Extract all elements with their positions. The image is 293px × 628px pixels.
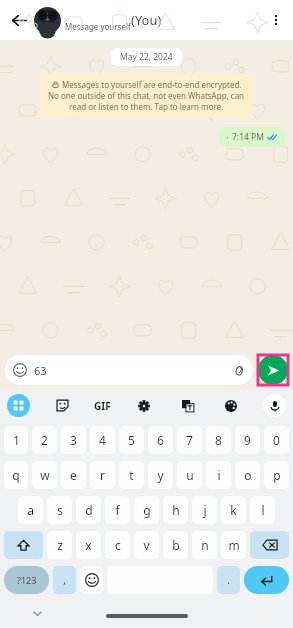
button[interactable]: 63 <box>5 355 253 385</box>
staticText: 3 <box>70 432 77 448</box>
staticText: y <box>157 467 164 483</box>
button[interactable]: Translate <box>176 394 199 417</box>
button[interactable]: 6 <box>148 426 173 454</box>
button[interactable]: f <box>105 496 130 524</box>
button[interactable]: Send <box>258 355 288 385</box>
staticText: 4 <box>99 432 106 448</box>
button[interactable]: 8 <box>206 426 231 454</box>
staticText: s <box>57 502 63 518</box>
button[interactable]: a <box>18 496 43 524</box>
button[interactable]: h <box>163 496 188 524</box>
button[interactable]: Shift <box>4 531 43 559</box>
button[interactable]: Back <box>6 7 32 33</box>
button[interactable]: Messages to yourself are end-to-end encr… <box>40 73 253 118</box>
button[interactable]: 0 <box>264 426 289 454</box>
button[interactable]: . <box>217 566 240 594</box>
button[interactable]: q <box>4 461 28 489</box>
button[interactable]: , <box>53 566 76 594</box>
button[interactable]: Backspace <box>250 531 289 559</box>
staticText: ?123 <box>17 574 37 586</box>
staticText: w <box>40 467 50 483</box>
staticText: a <box>27 502 34 518</box>
staticText: h <box>172 502 180 518</box>
button[interactable]: x <box>76 531 101 559</box>
staticText: j <box>203 502 207 518</box>
button[interactable]: t <box>119 461 144 489</box>
staticText: 1 <box>13 432 20 448</box>
staticText: n <box>201 537 209 553</box>
staticText: r <box>100 467 105 483</box>
button[interactable]: l <box>250 496 275 524</box>
button[interactable]: m <box>221 531 246 559</box>
button[interactable]: 9 <box>235 426 260 454</box>
button[interactable]: p <box>264 461 289 489</box>
staticText: o <box>244 467 252 483</box>
button[interactable]: j <box>192 496 217 524</box>
button[interactable]: e <box>61 461 86 489</box>
staticText: 5 <box>128 432 135 448</box>
button[interactable]: Emoji <box>80 566 103 594</box>
button[interactable]: n <box>192 531 217 559</box>
other: Attach <box>232 364 245 377</box>
button[interactable]: Enter <box>244 566 289 594</box>
staticText: Messages to yourself are end-to-end encr… <box>62 79 242 90</box>
staticText: t <box>129 467 134 483</box>
staticText: (You) <box>131 11 162 29</box>
staticText: read or listen to them. Tap to learn mor… <box>69 101 224 112</box>
button[interactable]: Voice input <box>263 394 286 417</box>
staticText: i <box>217 467 221 483</box>
button[interactable]: May 22, 2024 <box>120 51 173 63</box>
button[interactable]: z <box>47 531 72 559</box>
button[interactable]: Apps <box>7 394 30 417</box>
button[interactable]: Hide keyboard <box>28 604 46 622</box>
button[interactable]: Stickers <box>51 394 74 417</box>
staticText: GIF <box>94 399 111 413</box>
button[interactable]: · <box>219 127 285 147</box>
staticText: v <box>143 537 150 553</box>
button[interactable]: Message yourself <box>34 0 203 40</box>
staticText: l <box>261 502 265 518</box>
staticText: q <box>12 467 20 483</box>
button[interactable]: 2 <box>32 426 57 454</box>
staticText: f <box>115 502 120 518</box>
button[interactable]: r <box>90 461 115 489</box>
staticText: k <box>230 502 237 518</box>
staticText: d <box>85 502 93 518</box>
button[interactable]: u <box>177 461 202 489</box>
button[interactable]: c <box>105 531 130 559</box>
staticText: z <box>57 537 63 553</box>
button[interactable]: More options <box>263 7 289 33</box>
button[interactable]: g <box>134 496 159 524</box>
button[interactable]: ?123 <box>4 566 49 594</box>
staticText: p <box>273 467 281 483</box>
staticText: c <box>115 537 121 553</box>
staticText: 0 <box>273 432 280 448</box>
button[interactable]: b <box>163 531 188 559</box>
staticText: u <box>186 467 194 483</box>
button[interactable]: v <box>134 531 159 559</box>
button[interactable]: 3 <box>61 426 86 454</box>
staticText: 6 <box>157 432 164 448</box>
staticText: May 22, 2024 <box>120 51 173 63</box>
button[interactable]: o <box>235 461 260 489</box>
button[interactable]: w <box>32 461 57 489</box>
staticText: e <box>70 467 77 483</box>
button[interactable]: d <box>76 496 101 524</box>
staticText: g <box>143 502 151 518</box>
button[interactable]: 1 <box>4 426 28 454</box>
staticText: m <box>228 537 240 553</box>
button[interactable]: s <box>47 496 72 524</box>
button[interactable]: Settings <box>132 394 155 417</box>
button[interactable]: 5 <box>119 426 144 454</box>
staticText: 63 <box>34 363 47 378</box>
button[interactable]: 4 <box>90 426 115 454</box>
button[interactable]: GIF <box>94 394 111 417</box>
button[interactable]: i <box>206 461 231 489</box>
button[interactable]: k <box>221 496 246 524</box>
button[interactable]: Theme <box>219 394 242 417</box>
staticText: 8 <box>215 432 222 448</box>
staticText: x <box>85 537 92 553</box>
button[interactable]: y <box>148 461 173 489</box>
button[interactable]: 7 <box>177 426 202 454</box>
